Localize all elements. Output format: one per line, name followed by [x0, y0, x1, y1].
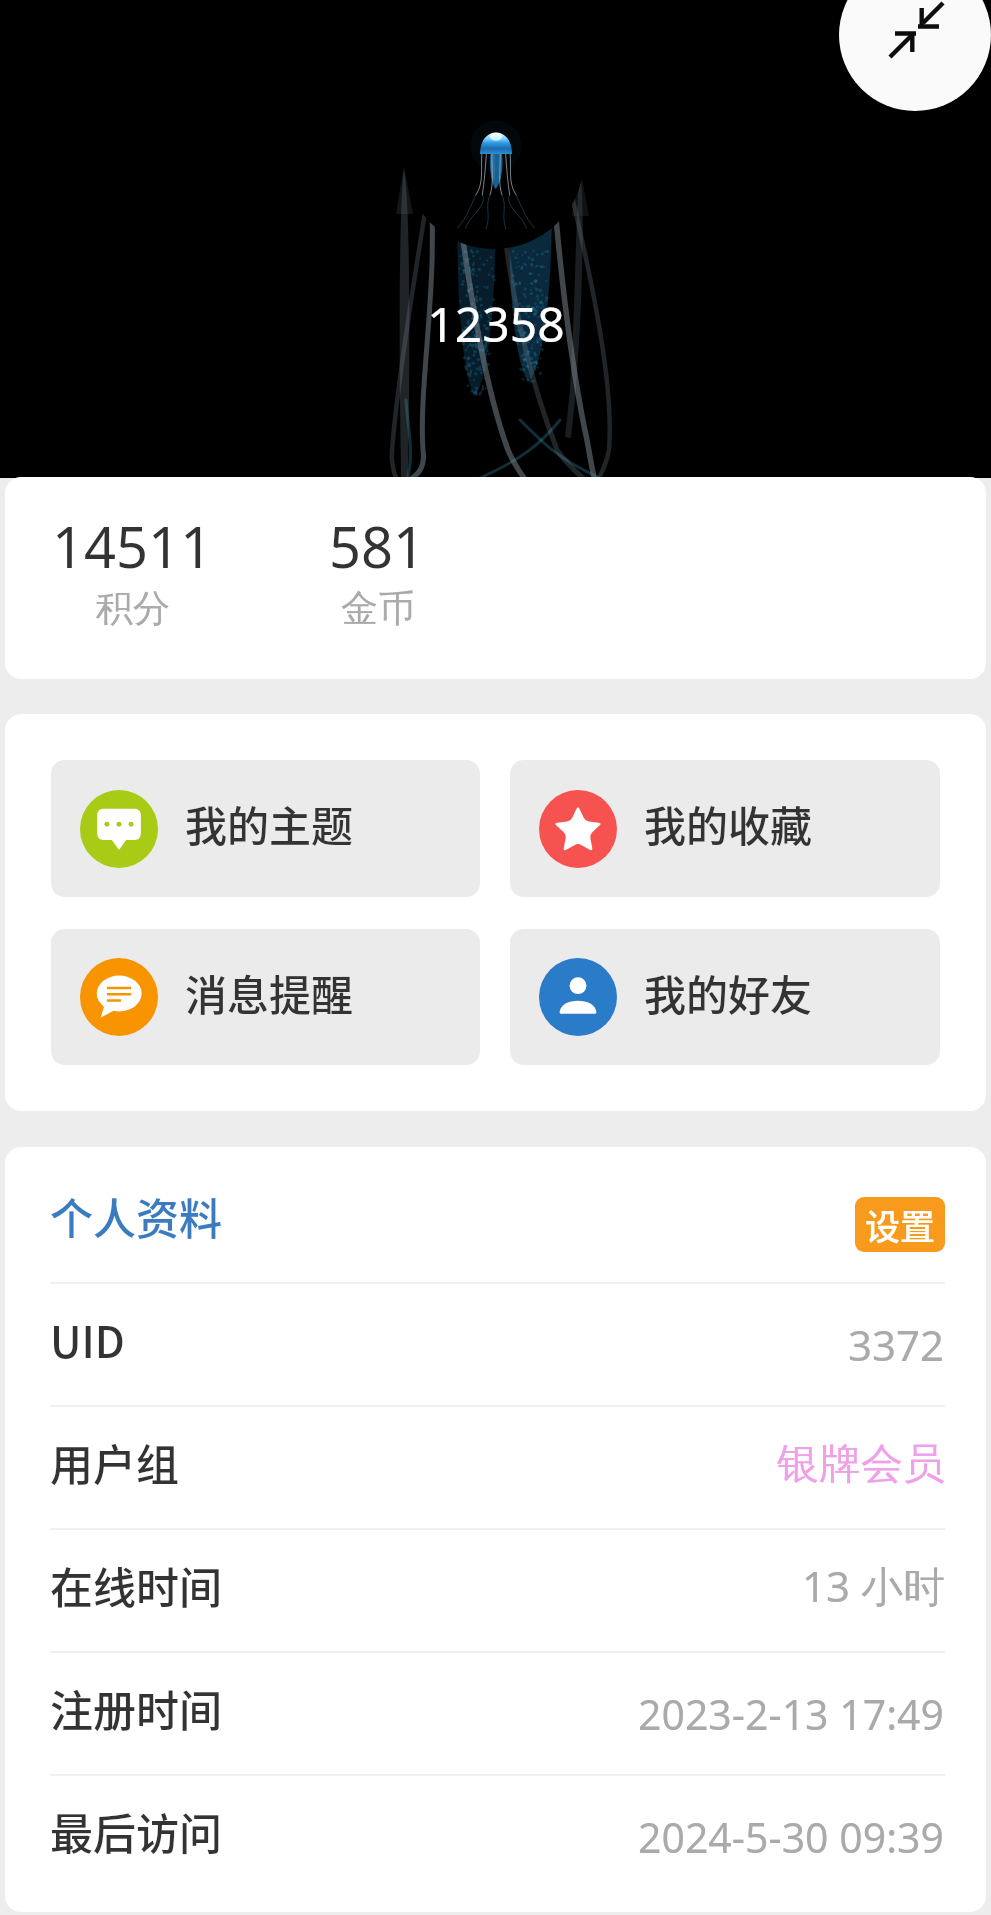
staticText: 14511 [52, 508, 213, 584]
staticText: 银牌会员 [777, 1438, 945, 1491]
staticText: 金币 [341, 585, 415, 632]
button[interactable]: 最后访问 [50, 1776, 945, 1897]
button[interactable]: UID [50, 1284, 945, 1405]
staticText: 在线时间 [50, 1554, 222, 1616]
staticText: 用户组 [50, 1431, 179, 1493]
staticText: 积分 [96, 585, 170, 632]
button[interactable]: 消息提醒 [51, 929, 480, 1065]
button[interactable]: 我的好友 [510, 929, 940, 1065]
staticText: 13 小时 [802, 1557, 945, 1614]
button[interactable]: 在线时间 [50, 1530, 945, 1651]
button[interactable]: 设置 [855, 1197, 945, 1252]
button[interactable]: 我的收藏 [510, 760, 940, 897]
staticText: 最后访问 [50, 1800, 222, 1862]
button[interactable]: 我的主题 [51, 760, 480, 897]
staticText: 12358 [427, 291, 565, 356]
staticText: 我的主题 [185, 793, 354, 854]
staticText: 我的好友 [644, 962, 813, 1023]
staticText: 581 [329, 508, 426, 584]
button[interactable]: 14511 [52, 477, 213, 631]
staticText: UID [50, 1308, 125, 1370]
staticText: 设置 [865, 1199, 936, 1250]
staticText: 消息提醒 [185, 962, 354, 1023]
staticText: 2024-5-30 09:39 [638, 1809, 945, 1865]
button[interactable]: 581 [297, 477, 458, 631]
staticText: 3372 [848, 1316, 945, 1373]
staticText: 2023-2-13 17:49 [638, 1686, 945, 1742]
button[interactable]: Collapse [839, 0, 991, 111]
button[interactable]: 注册时间 [50, 1653, 945, 1774]
staticText: 注册时间 [50, 1677, 222, 1739]
button[interactable]: 用户组 [50, 1407, 945, 1528]
staticText: 个人资料 [50, 1185, 222, 1247]
staticText: 我的收藏 [644, 793, 813, 854]
